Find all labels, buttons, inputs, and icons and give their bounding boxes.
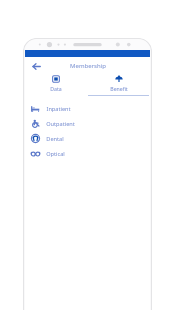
staticText: Optical — [46, 150, 65, 158]
button[interactable]: Benefit — [87, 74, 150, 96]
button[interactable]: Data — [25, 74, 87, 96]
staticText: Membership — [70, 62, 106, 70]
button[interactable]: Back — [28, 58, 44, 74]
staticText: Benefit — [110, 85, 128, 92]
button[interactable]: Inpatient — [25, 101, 150, 116]
staticText: Outpatient — [46, 120, 75, 128]
button[interactable]: Outpatient — [25, 116, 150, 131]
staticText: Data — [50, 85, 62, 92]
staticText: Dental — [46, 135, 64, 143]
button[interactable]: Optical — [25, 146, 150, 161]
staticText: Inpatient — [46, 105, 71, 113]
button[interactable]: Dental — [25, 131, 150, 146]
